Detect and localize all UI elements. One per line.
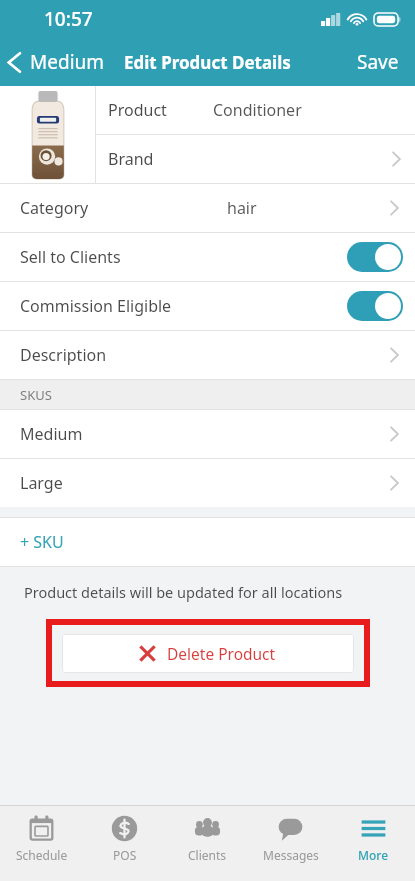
staticText: Save	[357, 49, 399, 75]
staticText: Category	[20, 197, 89, 219]
staticText: Messages	[263, 847, 319, 863]
staticText: Schedule	[16, 847, 68, 863]
staticText: hair	[227, 197, 257, 219]
button[interactable]: Schedule	[0, 806, 83, 863]
button[interactable]: Product	[96, 86, 415, 134]
button[interactable]: Clients	[166, 806, 249, 863]
button[interactable]: Large	[0, 459, 415, 507]
staticText: + SKU	[20, 531, 64, 553]
button[interactable]: Brand	[96, 135, 415, 183]
staticText: Conditioner	[213, 99, 302, 121]
staticText: More	[358, 847, 389, 863]
staticText: Delete Product	[167, 643, 276, 664]
button[interactable]: Sell to Clients	[0, 233, 415, 281]
staticText: Description	[20, 344, 107, 366]
button[interactable]: Save	[343, 43, 415, 81]
button[interactable]: POS	[83, 806, 166, 863]
button[interactable]: Category	[0, 184, 415, 232]
staticText: Brand	[108, 148, 154, 170]
staticText: Medium	[20, 423, 83, 445]
button[interactable]: + SKU	[0, 518, 415, 566]
button[interactable]: Commission Eligible	[0, 282, 415, 330]
button[interactable]: Sell to Clients toggle	[347, 242, 403, 272]
staticText: Product details will be updated for all …	[24, 582, 343, 602]
button[interactable]: Description	[0, 331, 415, 379]
button[interactable]: Medium	[0, 410, 415, 458]
button[interactable]: Medium	[0, 43, 115, 81]
staticText: Large	[20, 472, 63, 494]
staticText: POS	[113, 847, 137, 863]
button[interactable]: More	[332, 806, 415, 863]
button[interactable]: Delete Product	[62, 634, 354, 673]
button[interactable]: Commission Eligible toggle	[347, 291, 403, 321]
staticText: 10:57	[44, 6, 93, 32]
button[interactable]: Messages	[249, 806, 332, 863]
staticText: Edit Product Details	[124, 51, 291, 74]
staticText: Clients	[188, 847, 227, 863]
staticText: Product	[108, 99, 167, 121]
staticText: Sell to Clients	[20, 246, 121, 268]
staticText: SKUS	[20, 386, 52, 404]
staticText: Commission Eligible	[20, 295, 172, 317]
staticText: Medium	[30, 49, 105, 75]
